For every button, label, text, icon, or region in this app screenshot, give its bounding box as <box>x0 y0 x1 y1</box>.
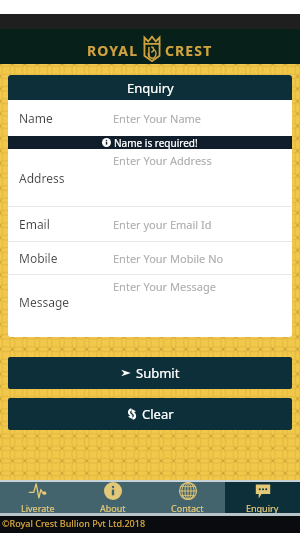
staticText: Name is required! <box>114 136 198 149</box>
staticText: ROYAL <box>87 41 139 60</box>
staticText: Enter your Email Id <box>113 217 212 232</box>
staticText: ©Royal Crest Bullion Pvt Ltd.2018 <box>2 517 146 529</box>
button[interactable]: Address <box>8 149 292 206</box>
staticText: Liverate <box>21 502 55 513</box>
button[interactable]: Contact <box>150 482 225 513</box>
button[interactable]: About <box>75 482 150 513</box>
staticText: Name <box>19 110 53 126</box>
button[interactable]: Enquiry <box>225 482 300 513</box>
staticText: Clear <box>142 405 174 423</box>
staticText: Enter Your Name <box>113 111 202 126</box>
staticText: About <box>100 502 126 513</box>
button[interactable]: Submit <box>8 357 292 389</box>
staticText: Enter Your Message <box>113 279 216 294</box>
button[interactable]: Liverate <box>0 482 75 513</box>
staticText: Address <box>19 170 65 186</box>
button[interactable]: Mobile <box>8 242 292 274</box>
staticText: Message <box>19 294 70 310</box>
staticText: Email <box>19 216 50 232</box>
staticText: CREST <box>165 41 213 60</box>
staticText: Contact <box>171 502 204 513</box>
staticText: Enter Your Address <box>113 153 212 168</box>
button[interactable]: Email <box>8 207 292 241</box>
staticText: Enquiry <box>246 502 279 513</box>
staticText: Mobile <box>19 250 58 266</box>
staticText: Submit <box>136 364 180 382</box>
button[interactable]: Clear <box>8 398 292 430</box>
button[interactable]: Message <box>8 275 292 337</box>
button[interactable]: Name <box>8 100 292 136</box>
staticText: Enter Your Mobile No <box>113 251 224 266</box>
staticText: Enquiry <box>127 79 174 97</box>
